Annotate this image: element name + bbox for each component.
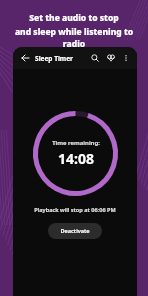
button[interactable]: Deactivate (48, 223, 102, 239)
button[interactable]: More options (120, 52, 132, 64)
button[interactable]: Search (88, 51, 102, 65)
staticText: Sleep Timer (35, 54, 73, 63)
staticText: Time remaining: (52, 139, 100, 147)
staticText: 14:08 (58, 149, 94, 168)
staticText: and sleep while listening to radio (6, 26, 142, 50)
staticText: Deactivate (60, 227, 90, 235)
button[interactable]: Favorite (104, 51, 118, 65)
button[interactable]: Back (18, 51, 32, 65)
staticText: Playback will stop at 06:06 PM (34, 206, 116, 214)
staticText: Set the audio to stop (29, 12, 119, 24)
